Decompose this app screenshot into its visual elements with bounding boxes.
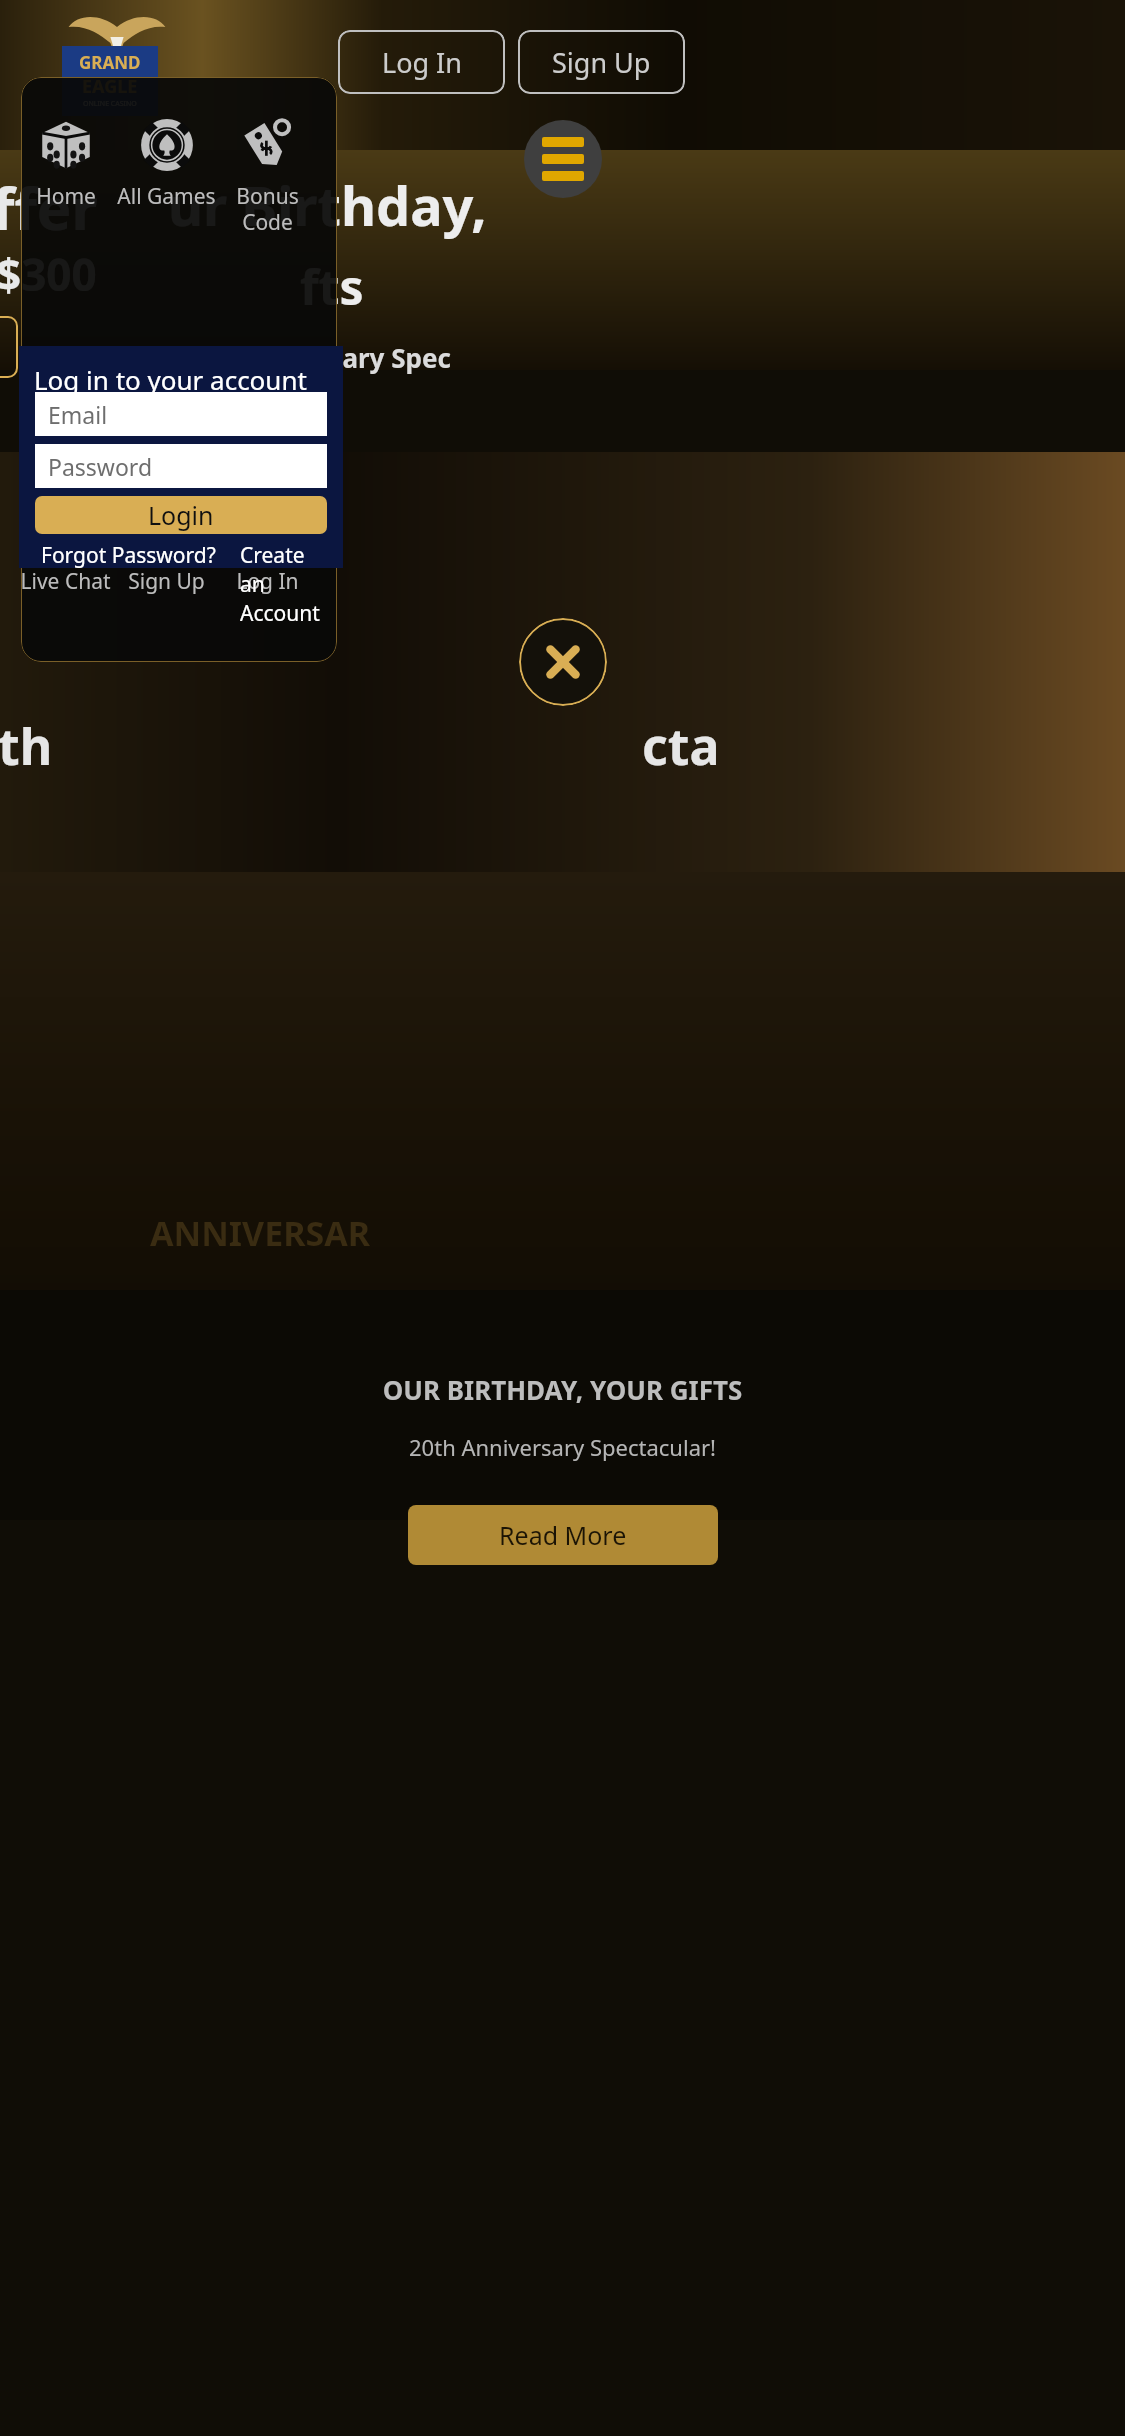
staticText: Sign Up: [552, 44, 651, 81]
staticText: 0th Anniversary Spec: [178, 340, 451, 375]
staticText: GRAND: [79, 51, 141, 74]
button[interactable]: Password: [35, 444, 327, 488]
button[interactable]: Live Chat: [15, 495, 116, 615]
button[interactable]: Sign Up: [116, 495, 217, 615]
staticText: Forgot Password?: [41, 541, 216, 570]
staticText: Password: [48, 451, 153, 482]
staticText: Sign Up: [128, 567, 205, 596]
staticText: Home: [36, 182, 96, 211]
staticText: ur Birthday,: [168, 168, 487, 242]
staticText: Log In: [236, 567, 299, 596]
staticText: fts: [300, 254, 364, 319]
button[interactable]: Create an Account: [240, 541, 321, 628]
staticText: Read More: [499, 1518, 627, 1552]
staticText: Log in to your account: [34, 362, 307, 397]
button[interactable]: Log In: [338, 30, 505, 94]
staticText: ONLINE CASINO: [83, 99, 137, 109]
button[interactable]: Close: [519, 618, 607, 706]
staticText: Log In: [382, 44, 462, 81]
button[interactable]: Bonus Code: [217, 110, 318, 230]
staticText: cta: [642, 712, 720, 780]
button[interactable]: Sign Up: [518, 30, 685, 94]
button[interactable]: Menu: [524, 120, 602, 198]
staticText: EAGLE: [82, 74, 138, 99]
button[interactable]: Forgot Password?: [41, 541, 216, 570]
staticText: Bonus Code: [236, 182, 299, 230]
staticText: th: [0, 712, 53, 780]
staticText: OUR BIRTHDAY, YOUR GIFTS: [0, 1372, 1125, 1407]
button[interactable]: All Games: [116, 110, 217, 230]
staticText: Create an Account: [240, 541, 321, 628]
staticText: Login: [148, 498, 214, 532]
staticText: Email: [48, 399, 108, 430]
staticText: $300: [0, 244, 97, 304]
staticText: ffer: [0, 168, 98, 247]
staticText: Live Chat: [20, 567, 111, 596]
button[interactable]: Email: [35, 392, 327, 436]
staticText: All Games: [117, 182, 216, 211]
button[interactable]: Home: [15, 110, 116, 230]
staticText: ANNIVERSAR: [150, 1210, 371, 1256]
button[interactable]: Login: [35, 496, 327, 534]
button[interactable]: Read More: [408, 1505, 718, 1565]
staticText: 20th Anniversary Spectacular!: [0, 1432, 1125, 1462]
button[interactable]: Log In: [217, 495, 318, 615]
